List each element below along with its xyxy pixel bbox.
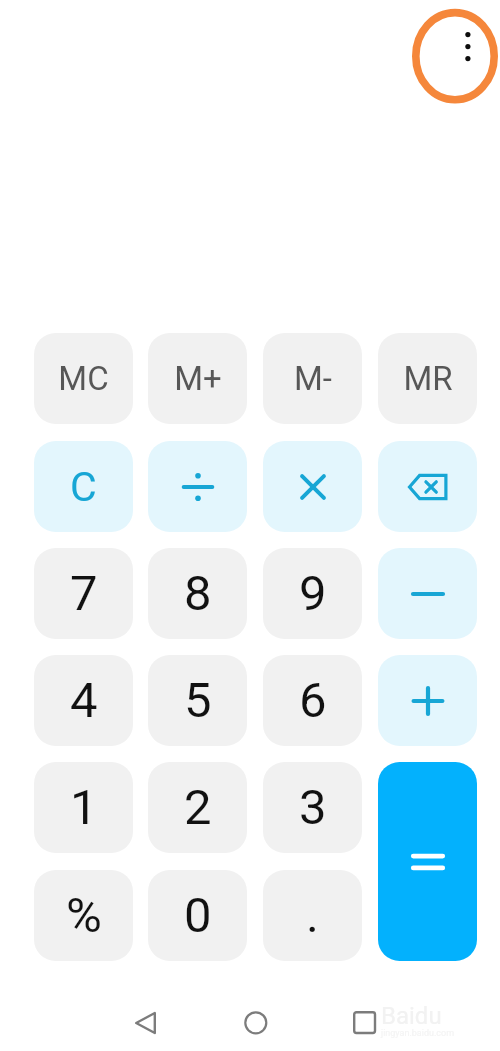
staticText: 7: [70, 565, 98, 622]
staticText: 3: [299, 779, 327, 836]
button[interactable]: MR: [378, 333, 477, 424]
staticText: MR: [403, 359, 453, 398]
staticText: 5: [184, 672, 212, 729]
button[interactable]: 1: [34, 762, 133, 853]
button[interactable]: 6: [263, 655, 362, 746]
staticText: M-: [294, 359, 332, 398]
button[interactable]: MC: [34, 333, 133, 424]
button[interactable]: 3: [263, 762, 362, 853]
staticText: jingyan.baidu.com: [381, 1028, 455, 1039]
staticText: 0: [184, 887, 212, 944]
button[interactable]: Multiply: [263, 441, 362, 532]
staticText: M+: [174, 359, 222, 398]
button[interactable]: Home: [242, 1009, 292, 1051]
button[interactable]: 7: [34, 548, 133, 639]
button[interactable]: Recents: [351, 1009, 401, 1051]
staticText: 2: [184, 779, 212, 836]
button[interactable]: 4: [34, 655, 133, 746]
staticText: 8: [184, 565, 212, 622]
staticText: .: [306, 887, 319, 944]
button[interactable]: Backspace: [378, 441, 477, 532]
staticText: 4: [70, 672, 98, 729]
staticText: Baidu: [381, 1002, 442, 1030]
button[interactable]: More options: [440, 28, 496, 84]
button[interactable]: Plus: [378, 655, 477, 746]
button[interactable]: 2: [148, 762, 247, 853]
staticText: C: [70, 463, 97, 511]
button[interactable]: .: [263, 870, 362, 961]
staticText: 9: [299, 565, 327, 622]
button[interactable]: M+: [148, 333, 247, 424]
button[interactable]: M-: [263, 333, 362, 424]
button[interactable]: %: [34, 870, 133, 961]
button[interactable]: 8: [148, 548, 247, 639]
staticText: 1: [70, 779, 98, 836]
button[interactable]: Equals: [378, 762, 477, 961]
button[interactable]: C: [34, 441, 133, 532]
button[interactable]: 0: [148, 870, 247, 961]
staticText: MC: [58, 359, 109, 398]
button[interactable]: 5: [148, 655, 247, 746]
button[interactable]: Divide: [148, 441, 247, 532]
staticText: 6: [299, 672, 327, 729]
button[interactable]: Minus: [378, 548, 477, 639]
staticText: %: [66, 887, 102, 944]
button[interactable]: 9: [263, 548, 362, 639]
button[interactable]: Back: [132, 1009, 182, 1051]
